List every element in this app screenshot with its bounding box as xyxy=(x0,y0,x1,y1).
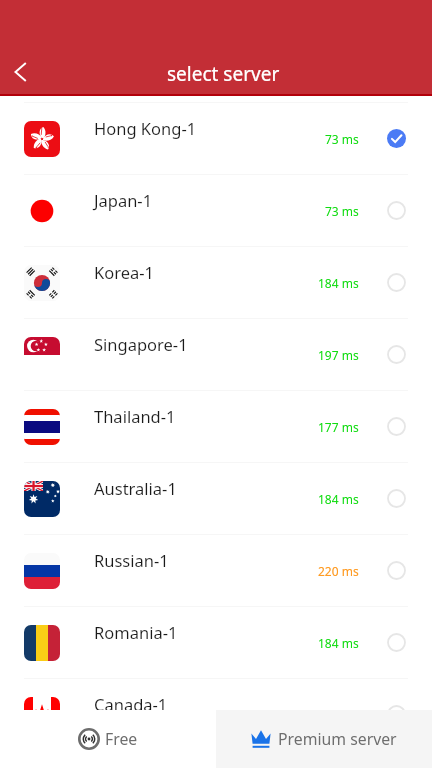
button[interactable]: Select server xyxy=(387,273,406,292)
staticText: Thailand-1 xyxy=(94,405,176,427)
staticText: Korea-1 xyxy=(94,261,154,283)
staticText: 184 ms xyxy=(318,491,359,507)
staticText: Romania-1 xyxy=(94,621,178,643)
button[interactable]: Select server xyxy=(387,417,406,436)
button[interactable]: Romania-1 xyxy=(0,607,432,678)
button[interactable]: Australia-1 xyxy=(0,463,432,534)
staticText: 220 ms xyxy=(318,563,359,579)
button[interactable]: Select server xyxy=(387,345,406,364)
button[interactable]: Canada-1 xyxy=(0,679,432,710)
button[interactable]: Hong Kong-1 xyxy=(0,103,432,174)
staticText: Canada-1 xyxy=(94,693,168,710)
staticText: 73 ms xyxy=(325,203,359,219)
staticText: 177 ms xyxy=(318,419,359,435)
button[interactable]: Back xyxy=(0,48,48,96)
staticText: 73 ms xyxy=(325,131,359,147)
button[interactable]: Select server xyxy=(387,633,406,652)
staticText: Premium server xyxy=(278,728,397,750)
button[interactable]: Select server xyxy=(387,705,406,710)
button[interactable]: Thailand-1 xyxy=(0,391,432,462)
staticText: Singapore-1 xyxy=(94,333,188,355)
staticText: Australia-1 xyxy=(94,477,177,499)
button[interactable]: Premium server xyxy=(216,710,432,768)
button[interactable]: Selected server xyxy=(387,129,406,148)
button[interactable]: Singapore-1 xyxy=(0,319,432,390)
staticText: Free xyxy=(105,728,138,750)
button[interactable]: Free xyxy=(0,710,216,768)
staticText: Japan-1 xyxy=(94,189,153,211)
button[interactable]: Select server xyxy=(387,561,406,580)
button[interactable]: Select server xyxy=(387,489,406,508)
button[interactable]: Korea-1 xyxy=(0,247,432,318)
button[interactable]: Select server xyxy=(387,201,406,220)
staticText: select server xyxy=(167,61,280,87)
staticText: 197 ms xyxy=(318,347,359,363)
staticText: 184 ms xyxy=(318,275,359,291)
staticText: Russian-1 xyxy=(94,549,169,571)
staticText: 184 ms xyxy=(318,635,359,651)
button[interactable]: Russian-1 xyxy=(0,535,432,606)
button[interactable]: Japan-1 xyxy=(0,175,432,246)
staticText: Hong Kong-1 xyxy=(94,117,197,139)
